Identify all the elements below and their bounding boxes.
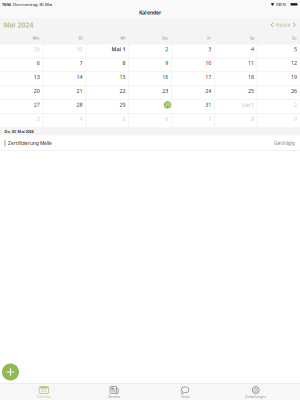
staticText: Sa [250,35,254,41]
button[interactable]: 26 [257,86,300,99]
staticText: 21 [77,87,83,94]
staticText: 2 [294,101,297,108]
button[interactable]: 21 [43,86,86,99]
button[interactable]: 11 [214,58,257,72]
button[interactable]: 5 [257,44,300,58]
staticText: 12 [291,59,297,67]
button[interactable]: Mai 1 [86,44,129,58]
button[interactable]: Jun 1 [214,100,257,113]
button[interactable]: Chats [150,385,220,400]
staticText: 30 [164,102,170,108]
staticText: Do. 30. Mai 2024 [4,129,33,134]
staticText: 31 [205,101,211,108]
button[interactable]: Heute [276,19,291,30]
button[interactable]: 28 [43,100,86,113]
button[interactable]: 19 [257,72,300,85]
staticText: 15 [119,73,125,81]
button[interactable]: 4 [43,114,86,127]
staticText: Zertifizierung Melle [8,140,52,146]
staticText: Einstellungen [245,395,266,399]
button[interactable]: 6 [129,114,171,127]
staticText: 6 [37,59,40,67]
staticText: 10:56 [2,1,11,7]
button[interactable]: 25 [214,86,257,99]
button[interactable]: 3 [171,44,214,58]
staticText: 25 [248,87,254,94]
button[interactable]: 2 [129,44,171,58]
staticText: 22 [119,87,125,94]
button[interactable]: Kalender [9,385,79,400]
staticText: 2 [165,45,168,53]
button[interactable]: Neuen Termin hinzufügen [2,363,19,380]
button[interactable]: 24 [171,86,214,99]
button[interactable]: 2 [257,100,300,113]
staticText: Mi [120,35,125,41]
button[interactable]: 30 [129,100,171,113]
staticText: 18 [248,73,254,81]
button[interactable]: 9 [257,114,300,127]
button[interactable]: 22 [86,86,129,99]
staticText: 23 [162,87,168,94]
staticText: Chats [181,395,189,399]
button[interactable]: 29 [86,100,129,113]
staticText: Ganztägig [274,140,295,146]
button[interactable]: Nächster Monat [291,19,298,30]
button[interactable]: 9 [129,58,171,72]
staticText: 4 [251,45,254,53]
button[interactable]: 30 [43,44,86,58]
staticText: 30 [77,45,83,53]
button[interactable]: 13 [0,72,43,85]
button[interactable]: 27 [0,100,43,113]
staticText: 8 [122,59,125,67]
staticText: 29 [34,45,40,53]
button[interactable]: 18 [214,72,257,85]
staticText: 9 [165,59,168,67]
staticText: 14 [77,73,83,81]
staticText: Donnerstag 30. Mai [13,1,52,7]
staticText: 20 [34,87,40,94]
staticText: 19 [291,73,297,81]
staticText: 4 [80,115,83,122]
button[interactable]: 8 [214,114,257,127]
staticText: 7 [80,59,83,67]
button[interactable]: 8 [86,58,129,72]
staticText: 3 [208,45,211,53]
button[interactable]: 15 [86,72,129,85]
staticText: Mai 1 [111,45,125,53]
button[interactable]: 10 [171,58,214,72]
button[interactable]: 17 [171,72,214,85]
button[interactable]: 31 [171,100,214,113]
button[interactable]: 12 [257,58,300,72]
button[interactable]: Einstellungen [220,385,291,400]
button[interactable]: Zertifizierung Melle [0,136,300,151]
button[interactable]: 5 [86,114,129,127]
staticText: Berichte [108,395,120,399]
staticText: 6 [165,115,168,122]
staticText: Jun 1 [242,101,254,108]
staticText: So [292,35,297,41]
staticText: Mo [33,35,40,41]
staticText: 17 [205,73,211,81]
staticText: 28 [77,101,83,108]
button[interactable]: 6 [0,58,43,72]
staticText: Kalender [139,9,161,16]
staticText: 29 [119,101,125,108]
staticText: Mai 2024 [4,20,34,29]
button[interactable]: 20 [0,86,43,99]
staticText: 3 [37,115,40,122]
button[interactable]: 29 [0,44,43,58]
staticText: 27 [34,101,40,108]
button[interactable]: 14 [43,72,86,85]
button[interactable]: Vorheriger Monat [269,19,276,30]
button[interactable]: 4 [214,44,257,58]
staticText: 10 [205,59,211,67]
staticText: 8 [251,115,254,122]
button[interactable]: Berichte [79,385,150,400]
button[interactable]: 23 [129,86,171,99]
button[interactable]: 16 [129,72,171,85]
staticText: 100 % [275,1,286,7]
button[interactable]: 7 [43,58,86,72]
staticText: 5 [294,45,297,53]
